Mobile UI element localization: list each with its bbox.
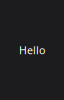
staticText: Hello [19, 43, 45, 57]
